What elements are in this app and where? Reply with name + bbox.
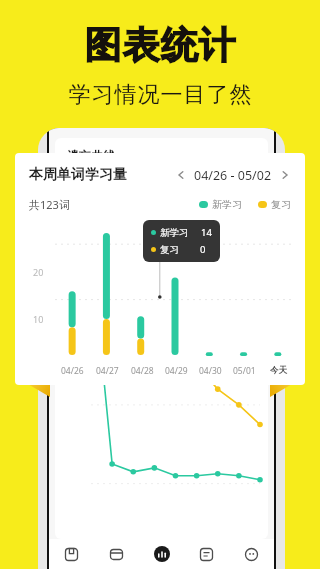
- button[interactable]: Books: [49, 539, 94, 569]
- staticText: 今天: [270, 365, 287, 376]
- staticText: 04/27: [96, 365, 119, 377]
- staticText: 复习: [271, 198, 291, 211]
- button[interactable]: Profile: [229, 539, 274, 569]
- staticText: 10: [33, 313, 44, 325]
- button[interactable]: 复习: [258, 198, 291, 211]
- staticText: 04/26 - 05/02: [194, 167, 272, 184]
- staticText: 我的遗忘曲线: [198, 177, 258, 190]
- staticText: 艾宾浩斯遗忘曲线: [95, 177, 175, 190]
- staticText: 学习情况一目了然: [68, 81, 252, 109]
- staticText: 40%: [63, 286, 78, 296]
- button[interactable]: 我的遗忘曲线: [185, 177, 258, 190]
- staticText: 新学习: [212, 198, 242, 211]
- staticText: 04/30: [199, 365, 222, 377]
- staticText: 新学习: [160, 227, 189, 239]
- staticText: 复习: [160, 244, 179, 256]
- button[interactable]: Previous week: [173, 167, 189, 183]
- button[interactable]: Cards: [94, 539, 139, 569]
- staticText: 遗忘曲线: [67, 148, 115, 163]
- staticText: 本周单词学习量: [29, 166, 127, 184]
- staticText: 100%: [63, 207, 83, 217]
- staticText: 04/28: [131, 365, 154, 377]
- staticText: 04/26: [61, 365, 84, 377]
- staticText: 共123词: [29, 197, 70, 212]
- button[interactable]: 新学习: [199, 198, 242, 211]
- button[interactable]: Notes: [184, 539, 229, 569]
- staticText: 14: [201, 226, 212, 239]
- button[interactable]: Statistics: [139, 539, 184, 569]
- button[interactable]: 艾宾浩斯遗忘曲线: [82, 177, 175, 190]
- staticText: 05/01: [233, 365, 256, 377]
- staticText: 记忆率: [63, 194, 84, 203]
- staticText: 20: [33, 266, 44, 278]
- button[interactable]: Next week: [277, 167, 293, 183]
- staticText: 04/29: [165, 365, 188, 377]
- staticText: 图表统计: [84, 22, 236, 69]
- staticText: 0: [200, 243, 206, 256]
